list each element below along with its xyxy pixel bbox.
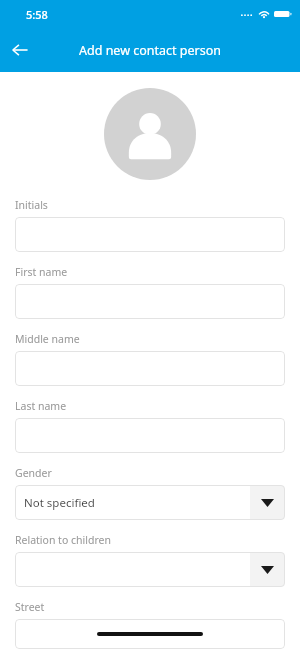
staticText: Not specified	[24, 495, 95, 511]
button[interactable]	[15, 351, 285, 386]
staticText: First name	[15, 265, 68, 279]
staticText: Initials	[15, 198, 48, 212]
staticText: Middle name	[15, 332, 80, 346]
button[interactable]: Relation to children	[15, 552, 285, 587]
staticText: Add new contact person	[44, 42, 256, 59]
staticText: Gender	[15, 466, 52, 480]
button[interactable]	[15, 284, 285, 319]
button[interactable]	[15, 217, 285, 252]
button[interactable]: Gender	[15, 485, 285, 520]
staticText: 5:58	[26, 7, 48, 22]
staticText: Street	[15, 600, 45, 614]
button[interactable]	[15, 418, 285, 453]
staticText: Last name	[15, 399, 67, 413]
button[interactable]: Back	[0, 30, 40, 70]
staticText: Relation to children	[15, 533, 111, 547]
button[interactable]	[15, 619, 285, 649]
